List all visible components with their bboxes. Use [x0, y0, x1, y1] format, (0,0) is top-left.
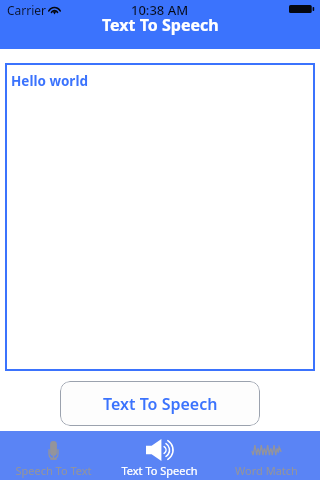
staticText: Text To Speech: [103, 393, 218, 415]
staticText: Text To Speech: [121, 463, 198, 478]
button[interactable]: Hello world: [5, 63, 315, 371]
button[interactable]: Speech To Text: [0, 431, 106, 480]
staticText: Word Match: [235, 463, 298, 478]
other: Word Match: [252, 445, 281, 456]
staticText: 10:38 AM: [131, 1, 189, 19]
button[interactable]: Text To Speech: [106, 431, 213, 480]
staticText: Speech To Text: [15, 463, 92, 478]
other: Text To Speech: [146, 439, 174, 461]
button[interactable]: Word Match: [213, 431, 320, 480]
other: Speech To Text: [48, 441, 59, 460]
staticText: Text To Speech: [102, 14, 219, 36]
staticText: Carrier: [7, 2, 47, 18]
button[interactable]: Text To Speech: [60, 381, 260, 426]
staticText: Hello world: [11, 72, 88, 90]
